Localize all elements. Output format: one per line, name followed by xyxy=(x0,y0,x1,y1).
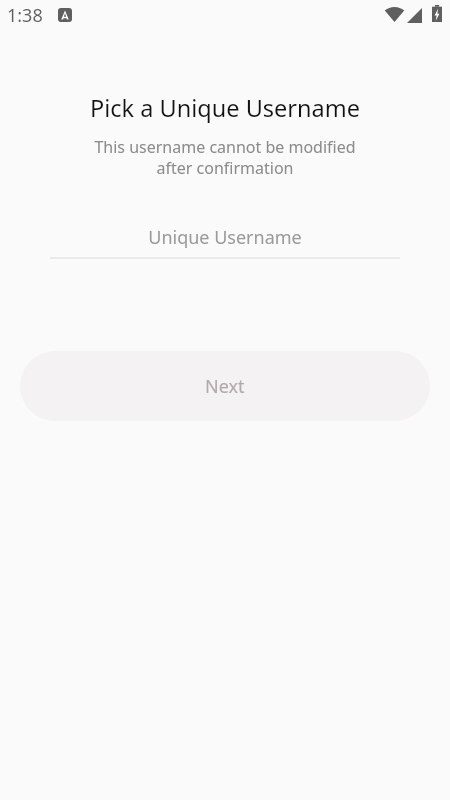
staticText: 1:38 xyxy=(7,3,43,28)
button[interactable]: Next xyxy=(20,351,430,421)
other: Battery charging xyxy=(432,5,442,22)
staticText: This username cannot be modified after c… xyxy=(0,136,450,179)
staticText: Next xyxy=(205,374,245,399)
other: App notification xyxy=(58,8,72,22)
staticText: Pick a Unique Username xyxy=(0,92,450,124)
staticText: Unique Username xyxy=(50,225,400,250)
button[interactable]: Unique Username xyxy=(50,215,400,259)
other: Mobile signal xyxy=(407,8,422,23)
other: Wi-Fi xyxy=(385,7,404,22)
